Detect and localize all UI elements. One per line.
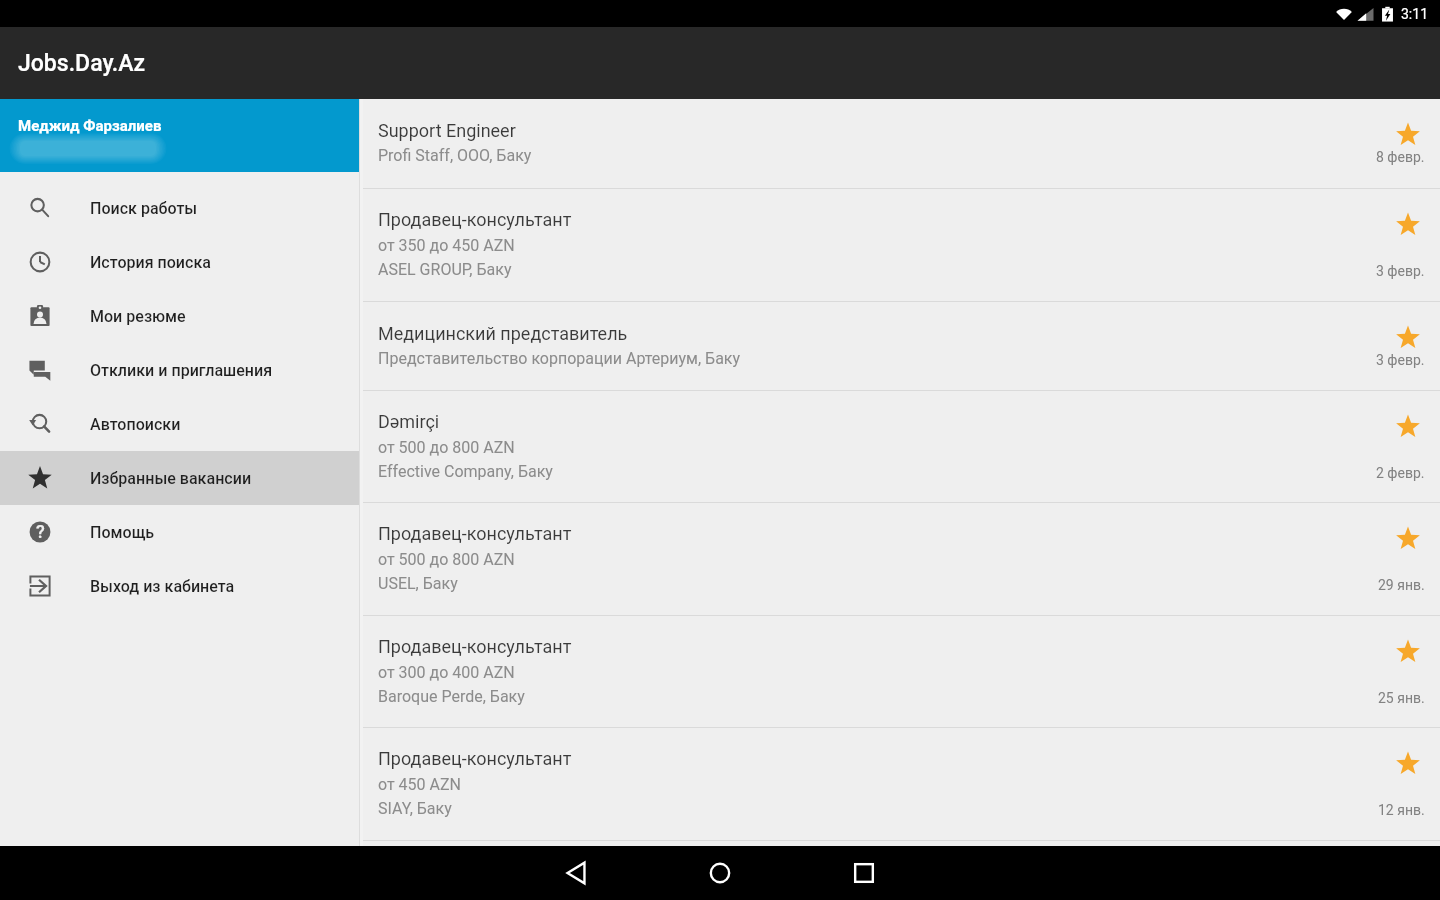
button[interactable]: Продавец-консультант [363,616,1440,727]
staticText: Мои резюме [90,307,186,326]
staticText: 12 янв. [1378,802,1425,818]
button[interactable]: Recents [846,855,882,891]
staticText: Dəmirçi [378,411,440,432]
button[interactable]: Dəmirçi [363,391,1440,502]
staticText: Выход из кабинета [90,577,235,596]
staticText: Продавец-консультант [378,523,572,544]
button[interactable]: Favourite [1394,525,1422,553]
staticText: от 500 до 800 AZN [378,550,515,569]
staticText: Продавец-консультант [378,209,572,230]
staticText: Помощь [90,523,155,542]
button[interactable]: Favourite [1394,638,1422,666]
staticText: Медицинский представитель [378,323,628,344]
staticText: Support Engineer [378,120,516,141]
staticText: Baroque Perde, Баку [378,687,525,706]
staticText: Представительство корпорации Артериум, Б… [378,349,741,368]
staticText: Продавец-консультант [378,748,572,769]
staticText: 29 янв. [1378,577,1425,593]
staticText: Profi Staff, OOO, Баку [378,146,532,165]
button[interactable]: Favourite [1394,324,1422,352]
button[interactable]: Favourite [1394,121,1422,149]
staticText: Поиск работы [90,199,198,218]
staticText: История поиска [90,253,211,272]
button[interactable]: Поиск работы [0,181,359,235]
staticText: от 300 до 400 AZN [378,663,515,682]
staticText: Продавец-консультант [378,636,572,657]
staticText: SIAY, Баку [378,799,452,818]
staticText: Меджид Фарзалиев [18,117,162,135]
staticText: Автопоиски [90,415,181,434]
button[interactable]: Автопоиски [0,397,359,451]
button[interactable]: Back [558,855,594,891]
staticText: 2 февр. [1376,465,1425,481]
button[interactable]: Продавец-консультант [363,503,1440,615]
staticText: от 500 до 800 AZN [378,438,515,457]
button[interactable]: Избранные вакансии [0,451,359,505]
button[interactable]: История поиска [0,235,359,289]
button[interactable]: Отклики и приглашения [0,343,359,397]
staticText: Избранные вакансии [90,469,252,488]
staticText: от 450 AZN [378,775,461,794]
button[interactable]: Выход из кабинета [0,559,359,613]
button[interactable]: Favourite [1394,750,1422,778]
button[interactable]: ? [0,505,359,559]
staticText: Jobs.Day.Az [18,50,146,77]
button[interactable]: Favourite [1394,413,1422,441]
staticText: 25 янв. [1378,690,1425,706]
staticText: 3 февр. [1376,263,1425,279]
staticText: Effective Company, Баку [378,462,553,481]
staticText: 3:11 [1401,6,1428,22]
button[interactable]: Продавец-консультант [363,728,1440,840]
staticText: 3 февр. [1376,352,1425,368]
button[interactable]: Support Engineer [363,99,1440,188]
button[interactable]: Меджид Фарзалиев [0,99,359,172]
button[interactable]: Медицинский представитель [363,302,1440,390]
staticText: ASEL GROUP, Баку [378,260,512,279]
button[interactable]: Home [702,855,738,891]
button[interactable]: Продавец-консультант [363,189,1440,301]
staticText: от 350 до 450 AZN [378,236,515,255]
staticText: 8 февр. [1376,149,1425,165]
button[interactable]: Favourite [1394,211,1422,239]
staticText: ? [36,521,45,542]
staticText: Отклики и приглашения [90,361,273,380]
staticText: USEL, Баку [378,574,458,593]
button[interactable]: Мои резюме [0,289,359,343]
